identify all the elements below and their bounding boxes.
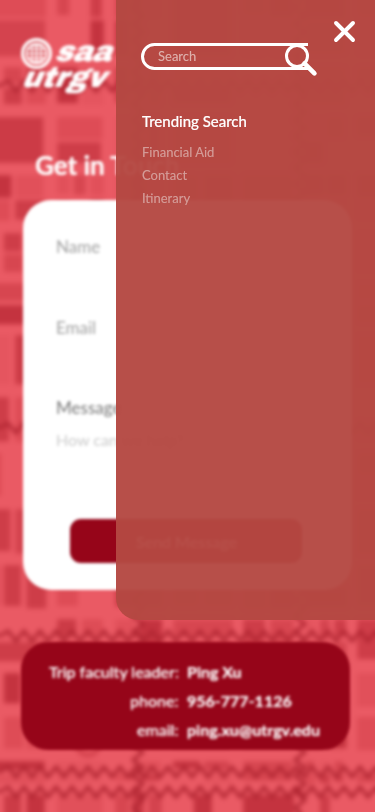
staticText: ping.xu@utrgv.edu [187,720,320,739]
button[interactable]: Itinerary [142,190,252,213]
staticText: email: [137,720,179,739]
staticText: 956-777-1126 [187,691,292,710]
staticText: Get in Touch [35,149,180,180]
staticText: phone: [130,691,179,710]
staticText: Trip faculty leader: [49,662,179,681]
button[interactable]: Name [56,236,319,270]
button[interactable]: Financial Aid [142,144,252,167]
staticText: Financial Aid [142,144,215,160]
staticText: Contact [142,167,188,183]
staticText: How can we help? [56,430,184,449]
staticText: Itinerary [142,190,191,206]
staticText: Email [56,317,97,337]
staticText: utrgv [21,62,104,94]
staticText: saa [54,36,111,68]
staticText: Name [56,236,101,256]
staticText: Search [158,48,197,64]
button[interactable]: Search [141,43,308,70]
staticText: Message [56,397,122,417]
staticText: Trending Search [142,112,247,130]
button[interactable]: Contact [142,167,252,190]
button[interactable]: Close [326,13,363,50]
button[interactable]: Send Message [70,519,302,563]
staticText: Ping Xu [187,662,242,681]
button[interactable]: Email [56,317,319,351]
button[interactable]: Message [56,397,319,459]
